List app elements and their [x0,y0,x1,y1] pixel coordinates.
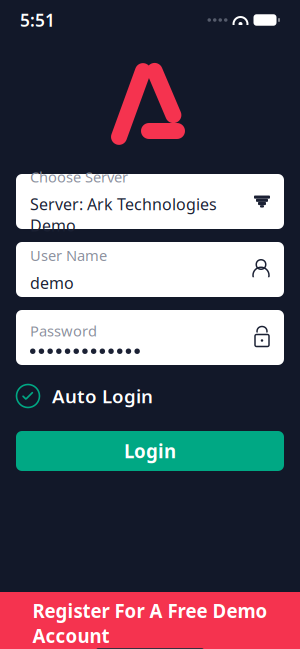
staticText: User Name [30,246,107,265]
button[interactable]: User Name [16,242,284,297]
button[interactable]: Choose Server [16,174,284,229]
staticText: Server: Ark Technologies Demo [30,193,217,236]
staticText: 5:51 [20,8,55,31]
staticText: demo [30,272,74,293]
button[interactable]: Login [16,431,284,471]
staticText: Choose Server [30,167,128,186]
button[interactable]: Auto Login [16,381,284,411]
staticText: Auto Login [52,384,153,408]
staticText: Login [124,439,176,463]
button[interactable]: Password [16,310,284,365]
staticText: Register For A Free Demo Account [32,598,267,648]
button[interactable]: Register For A Free Demo Account [0,592,300,649]
staticText: Password [30,321,97,340]
